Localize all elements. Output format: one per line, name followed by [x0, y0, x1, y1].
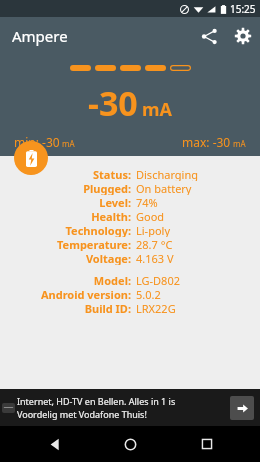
staticText: Android version:	[0, 287, 131, 301]
staticText: Model:	[0, 273, 131, 287]
staticText: Li-poly	[136, 223, 171, 237]
staticText: 4.163 V	[136, 251, 174, 265]
button[interactable]: Open advertisement	[230, 396, 254, 420]
staticText: Voltage:	[0, 251, 131, 265]
button[interactable]: Battery charging	[14, 141, 48, 175]
staticText: min: -30	[14, 134, 60, 150]
staticText: Good	[136, 209, 165, 223]
staticText: 74%	[136, 195, 158, 209]
staticText: mA	[142, 97, 173, 122]
staticText: mA	[62, 138, 75, 149]
button[interactable]: Health:	[0, 209, 260, 223]
staticText: Build ID:	[0, 301, 131, 315]
staticText: On battery	[136, 181, 192, 195]
staticText: LRX22G	[136, 301, 176, 315]
button[interactable]: Internet, HD-TV en Bellen. Alles in 1 is	[0, 389, 260, 426]
staticText: Health:	[0, 209, 131, 223]
staticText: Discharging	[136, 167, 198, 181]
staticText: Level:	[0, 195, 131, 209]
button[interactable]: Settings	[226, 19, 260, 53]
staticText: -30	[88, 80, 138, 126]
button[interactable]: Home	[107, 426, 153, 462]
button[interactable]: Status:	[0, 167, 260, 181]
staticText: Status:	[0, 167, 131, 181]
staticText: 15:25	[230, 2, 256, 16]
staticText: mA	[233, 138, 246, 149]
staticText: Internet, HD-TV en Bellen. Alles in 1 is	[17, 395, 176, 407]
staticText: Voordelig met Vodafone Thuis!	[17, 408, 147, 420]
staticText: Ampere	[12, 26, 68, 46]
button[interactable]: Share	[192, 19, 226, 53]
button[interactable]: Recent apps	[184, 426, 230, 462]
staticText: 28.7 °C	[136, 237, 173, 251]
button[interactable]: Android version:	[0, 287, 260, 301]
button[interactable]: Build ID:	[0, 301, 260, 315]
staticText: Plugged:	[0, 181, 131, 195]
button[interactable]: Temperature:	[0, 237, 260, 251]
button[interactable]: Voltage:	[0, 251, 260, 265]
button[interactable]: Back	[31, 426, 77, 462]
button[interactable]: Technology:	[0, 223, 260, 237]
staticText: max: -30	[182, 134, 231, 150]
button[interactable]: Model:	[0, 273, 260, 287]
staticText: Technology:	[0, 223, 131, 237]
button[interactable]: Plugged:	[0, 181, 260, 195]
staticText: LG-D802	[136, 273, 180, 287]
staticText: Temperature:	[0, 237, 131, 251]
staticText: 5.0.2	[136, 287, 161, 301]
button[interactable]: Level:	[0, 195, 260, 209]
